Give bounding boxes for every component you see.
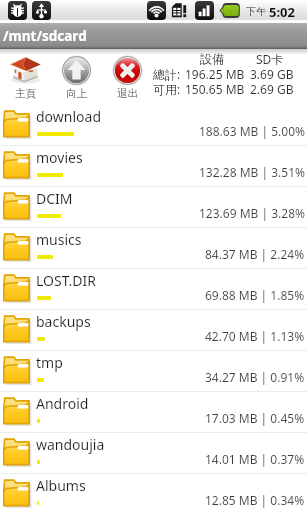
staticText: LOST.DIR	[36, 271, 97, 290]
staticText: 12.85 MB | 0.34%	[205, 492, 305, 508]
staticText: DCIM	[36, 189, 73, 208]
staticText: 5:02	[269, 3, 295, 21]
staticText: 196.25 MB	[185, 66, 245, 81]
staticText: 84.37 MB | 2.24%	[205, 246, 305, 262]
staticText: SD卡	[256, 51, 284, 66]
staticText: 下午	[246, 5, 266, 18]
button[interactable]: LOST.DIR	[0, 269, 307, 310]
staticText: 123.69 MB | 3.28%	[199, 205, 305, 221]
staticText: musics	[36, 230, 82, 249]
staticText: 14.01 MB | 0.37%	[205, 451, 305, 467]
button[interactable]: Exit	[105, 55, 150, 100]
button[interactable]: movies	[0, 146, 307, 187]
staticText: 總計:	[153, 66, 181, 81]
staticText: tmp	[36, 353, 63, 372]
staticText: 17.03 MB | 0.45%	[205, 410, 305, 426]
button[interactable]: wandoujia	[0, 433, 307, 474]
button[interactable]: tmp	[0, 351, 307, 392]
staticText: 可用:	[153, 81, 181, 96]
staticText: wandoujia	[36, 435, 105, 454]
button[interactable]: Albums	[0, 474, 307, 512]
staticText: 退出	[117, 87, 138, 100]
staticText: 150.65 MB	[185, 81, 245, 96]
staticText: 132.28 MB | 3.51%	[199, 164, 305, 180]
staticText: 3.69 GB	[250, 66, 294, 81]
staticText: 188.63 MB | 5.00%	[199, 123, 305, 139]
button[interactable]: musics	[0, 228, 307, 269]
staticText: 69.88 MB | 1.85%	[205, 287, 305, 303]
button[interactable]: download	[0, 105, 307, 146]
button[interactable]: Up	[54, 55, 99, 100]
staticText: Albums	[36, 476, 86, 495]
staticText: 設備	[200, 51, 224, 66]
staticText: backups	[36, 312, 91, 331]
staticText: movies	[36, 148, 83, 167]
staticText: /mnt/sdcard	[3, 27, 87, 45]
staticText: 主頁	[15, 87, 36, 100]
button[interactable]: backups	[0, 310, 307, 351]
staticText: 34.27 MB | 0.91%	[205, 369, 305, 385]
button[interactable]: DCIM	[0, 187, 307, 228]
button[interactable]: Android	[0, 392, 307, 433]
button[interactable]: Home	[3, 55, 48, 100]
staticText: 42.70 MB | 1.13%	[205, 328, 305, 344]
staticText: 向上	[66, 87, 87, 100]
staticText: download	[36, 107, 102, 126]
staticText: Android	[36, 394, 89, 413]
staticText: 2.69 GB	[250, 81, 294, 96]
